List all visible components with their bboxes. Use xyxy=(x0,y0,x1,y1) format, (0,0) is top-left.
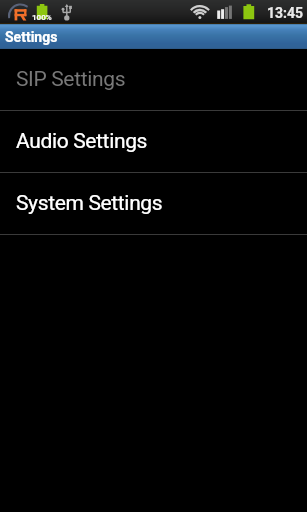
staticText: System Settings xyxy=(16,191,163,216)
staticText: Audio Settings xyxy=(16,129,148,154)
staticText: SIP Settings xyxy=(16,67,126,92)
staticText: 100% xyxy=(32,13,52,22)
button[interactable]: Audio Settings xyxy=(0,111,307,172)
staticText: Settings xyxy=(5,29,58,45)
staticText: 13:45 xyxy=(267,5,304,21)
button[interactable]: System Settings xyxy=(0,173,307,234)
button[interactable]: SIP Settings xyxy=(0,49,307,110)
